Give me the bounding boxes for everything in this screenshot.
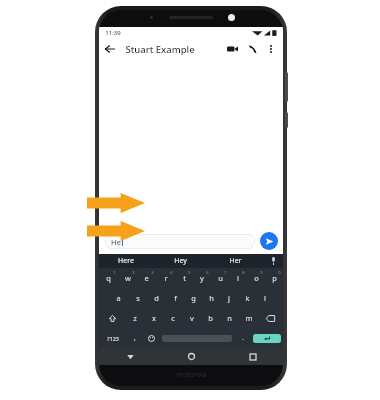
button[interactable]: b: [201, 308, 220, 328]
button[interactable]: .: [235, 328, 251, 348]
staticText: e: [144, 273, 149, 283]
staticText: j: [228, 293, 230, 303]
staticText: t: [183, 273, 186, 283]
staticText: x: [152, 313, 156, 323]
staticText: v: [190, 313, 194, 323]
button[interactable]: Back: [99, 348, 161, 365]
button[interactable]: v: [182, 308, 201, 328]
staticText: g: [191, 293, 196, 303]
button[interactable]: u: [211, 268, 229, 288]
button[interactable]: n: [220, 308, 239, 328]
staticText: u: [218, 273, 223, 283]
staticText: 8: [242, 270, 245, 275]
staticText: l: [264, 293, 266, 303]
button[interactable]: m: [239, 308, 258, 328]
staticText: s: [136, 293, 140, 303]
staticText: p: [272, 273, 277, 283]
staticText: 7: [224, 270, 227, 275]
staticText: r: [164, 273, 168, 283]
staticText: 2: [132, 270, 135, 275]
staticText: w: [125, 273, 131, 283]
button[interactable]: l: [256, 288, 274, 308]
button[interactable]: i: [229, 268, 247, 288]
staticText: 5: [188, 270, 191, 275]
button[interactable]: d: [147, 288, 166, 308]
button[interactable]: Enter: [253, 334, 281, 343]
button[interactable]: Here: [99, 254, 153, 268]
button[interactable]: w: [118, 268, 137, 288]
button[interactable]: ?123: [99, 328, 127, 348]
staticText: 9: [260, 270, 263, 275]
button[interactable]: Hey: [153, 254, 208, 268]
button[interactable]: x: [144, 308, 163, 328]
staticText: 11:39: [105, 29, 121, 37]
staticText: Her: [229, 256, 242, 266]
button[interactable]: y: [193, 268, 211, 288]
staticText: 6: [206, 270, 209, 275]
button[interactable]: Send: [260, 232, 278, 250]
staticText: .: [242, 333, 244, 343]
button[interactable]: Emoji: [143, 328, 159, 348]
button[interactable]: Her: [208, 254, 263, 268]
staticText: a: [116, 293, 121, 303]
button[interactable]: k: [238, 288, 256, 308]
button[interactable]: Shift: [99, 308, 125, 328]
staticText: 0: [278, 270, 281, 275]
staticText: motorola: [176, 370, 207, 380]
staticText: 1: [113, 270, 116, 275]
button[interactable]: h: [202, 288, 220, 308]
staticText: b: [208, 313, 213, 323]
staticText: ?123: [107, 335, 119, 342]
staticText: k: [245, 293, 250, 303]
button[interactable]: z: [125, 308, 144, 328]
staticText: o: [254, 273, 259, 283]
staticText: 4: [170, 270, 173, 275]
button[interactable]: g: [184, 288, 202, 308]
button[interactable]: f: [166, 288, 184, 308]
button[interactable]: q: [99, 268, 118, 288]
button[interactable]: t: [175, 268, 193, 288]
staticText: i: [237, 273, 239, 283]
staticText: Stuart Example: [125, 43, 195, 56]
staticText: q: [106, 273, 111, 283]
staticText: c: [171, 313, 175, 323]
button[interactable]: e: [137, 268, 156, 288]
button[interactable]: He: [105, 234, 255, 249]
button[interactable]: r: [156, 268, 175, 288]
button[interactable]: Call: [242, 39, 262, 59]
staticText: h: [209, 293, 214, 303]
staticText: y: [200, 273, 204, 283]
button[interactable]: Home: [161, 348, 222, 365]
button[interactable]: Video call: [222, 39, 242, 59]
button[interactable]: Back: [99, 38, 121, 60]
button[interactable]: Backspace: [258, 308, 283, 328]
button[interactable]: ,: [127, 328, 143, 348]
staticText: z: [133, 313, 137, 323]
button[interactable]: Recent apps: [222, 348, 283, 365]
staticText: ,: [134, 333, 136, 343]
staticText: d: [154, 293, 159, 303]
staticText: Here: [118, 256, 134, 266]
button[interactable]: s: [128, 288, 147, 308]
staticText: m: [245, 313, 253, 323]
button[interactable]: c: [163, 308, 182, 328]
button[interactable]: p: [265, 268, 283, 288]
staticText: n: [227, 313, 232, 323]
staticText: He: [111, 237, 121, 247]
button[interactable]: o: [247, 268, 265, 288]
staticText: Hey: [174, 256, 187, 266]
button[interactable]: j: [220, 288, 238, 308]
button[interactable]: a: [109, 288, 128, 308]
staticText: f: [174, 293, 177, 303]
staticText: 3: [151, 270, 154, 275]
button[interactable]: Voice input: [263, 254, 283, 268]
button[interactable]: More options: [262, 40, 280, 58]
